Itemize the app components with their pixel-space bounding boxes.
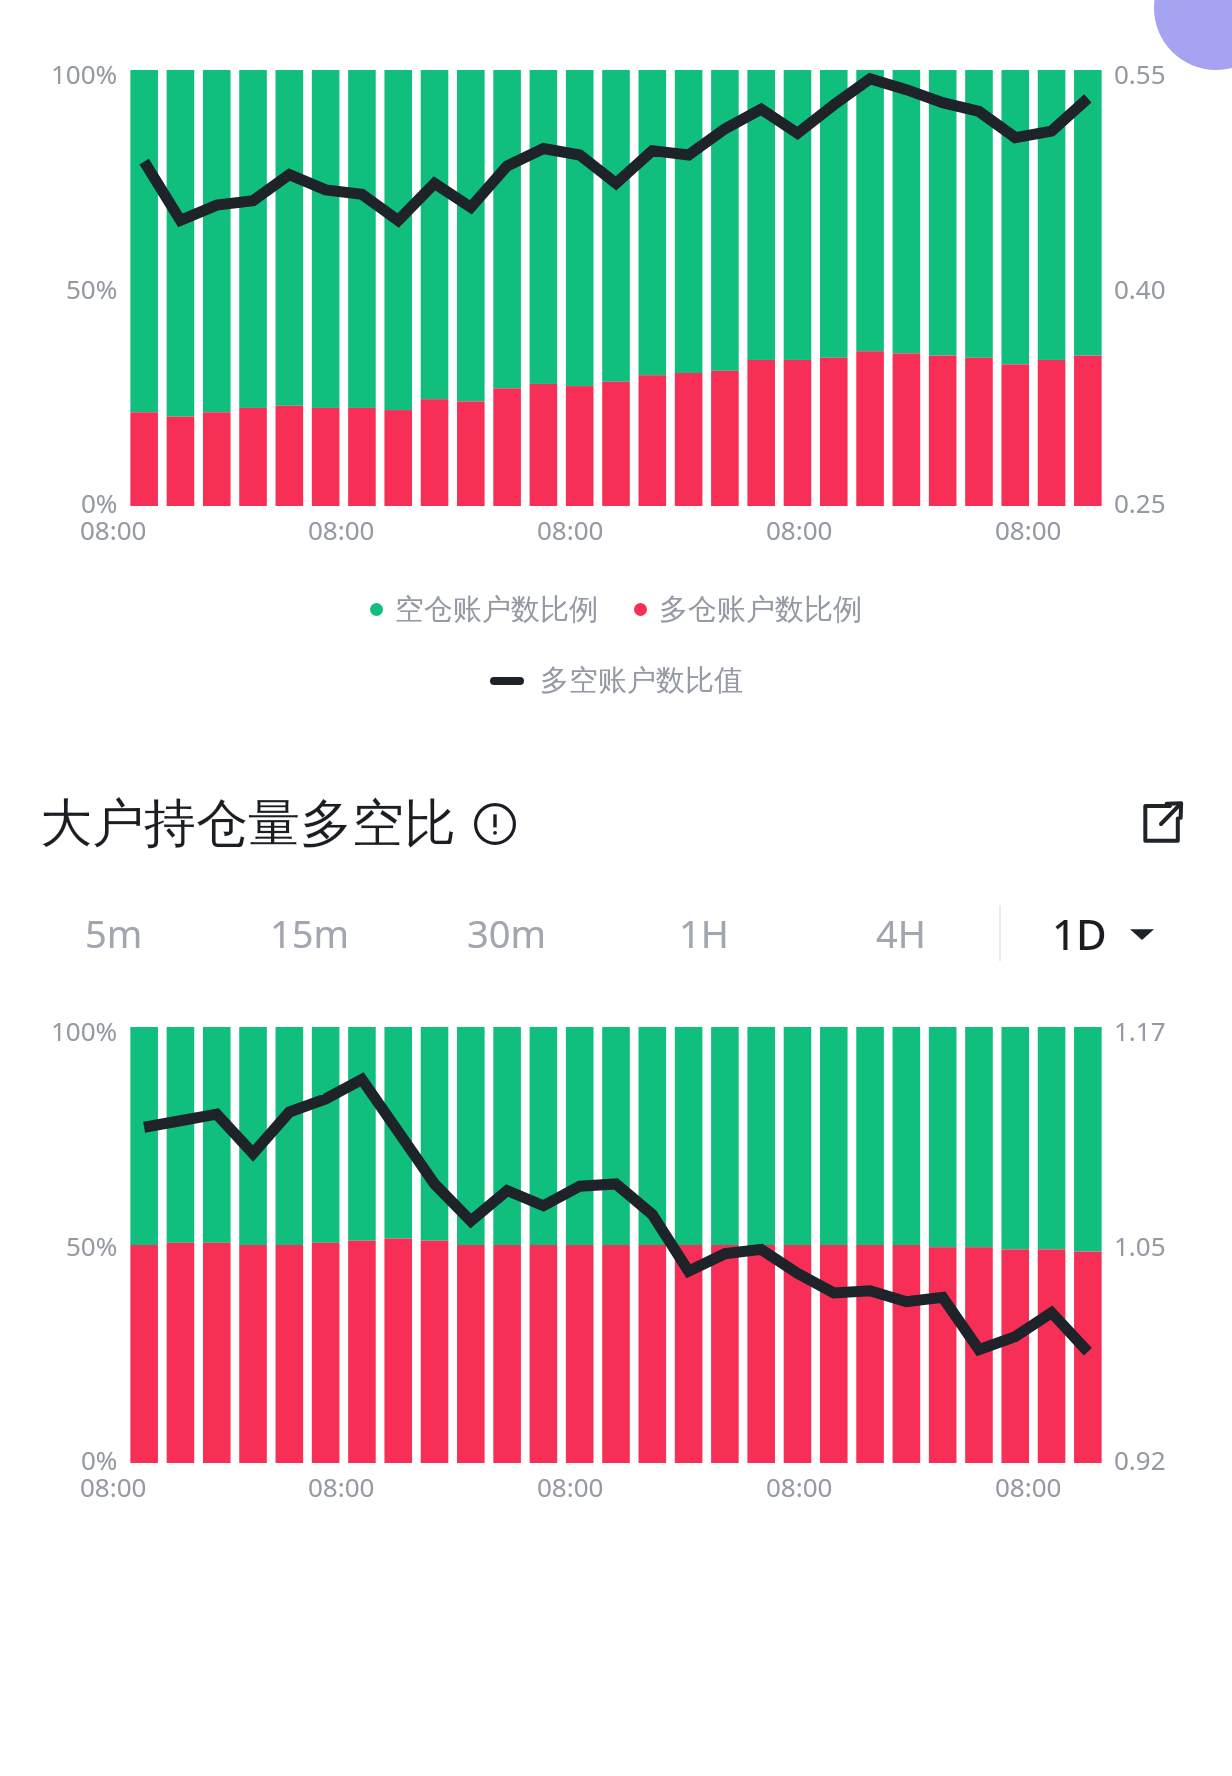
staticText: 1D <box>1052 905 1107 962</box>
staticText: 08:00 <box>766 1469 833 1504</box>
staticText: 1.17 <box>1114 1013 1166 1048</box>
staticText: 08:00 <box>80 1469 147 1504</box>
button[interactable]: 30m <box>408 893 605 973</box>
staticText: 08:00 <box>308 1469 375 1504</box>
staticText: 08:00 <box>80 512 147 547</box>
staticText: 0.55 <box>1114 56 1166 91</box>
staticText: 1H <box>679 907 729 959</box>
staticText: 空仓账户数比例 <box>395 591 598 628</box>
staticText: 1.05 <box>1114 1228 1166 1263</box>
staticText: 5m <box>85 907 143 959</box>
staticText: 08:00 <box>537 1469 604 1504</box>
staticText: 多仓账户数比例 <box>659 591 862 628</box>
staticText: 08:00 <box>995 1469 1062 1504</box>
staticText: 0.25 <box>1114 485 1166 520</box>
button[interactable]: 5m <box>16 893 212 973</box>
button[interactable]: 4H <box>802 893 999 973</box>
staticText: 100% <box>51 56 118 91</box>
staticText: 0.92 <box>1114 1442 1166 1477</box>
staticText: 大户持仓量多空比 <box>40 791 456 857</box>
button[interactable]: 大户持仓量多空比 <box>40 791 516 857</box>
other: Info <box>474 803 516 845</box>
staticText: 4H <box>876 907 926 959</box>
button[interactable]: Share <box>1130 793 1192 855</box>
staticText: 50% <box>66 1228 118 1263</box>
staticText: 50% <box>66 271 118 306</box>
staticText: 30m <box>467 907 547 959</box>
button[interactable]: 15m <box>212 893 408 973</box>
staticText: 08:00 <box>308 512 375 547</box>
button[interactable]: 1H <box>605 893 802 973</box>
staticText: 0.40 <box>1114 271 1166 306</box>
staticText: 08:00 <box>995 512 1062 547</box>
staticText: 多空账户数比值 <box>540 662 743 699</box>
staticText: 100% <box>51 1013 118 1048</box>
staticText: 08:00 <box>766 512 833 547</box>
staticText: 08:00 <box>537 512 604 547</box>
staticText: 15m <box>270 907 350 959</box>
staticText: 0% <box>81 485 118 520</box>
staticText: 0% <box>81 1442 118 1477</box>
button[interactable]: 1D <box>1001 905 1208 962</box>
